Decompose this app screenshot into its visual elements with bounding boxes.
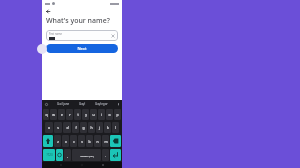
button[interactable]: h — [88, 122, 95, 133]
staticText: k — [107, 125, 109, 130]
button[interactable]: Shift — [43, 135, 53, 147]
button[interactable]: English (US) — [72, 149, 101, 161]
staticText: w — [52, 112, 55, 117]
staticText: t — [77, 112, 79, 117]
staticText: , — [67, 153, 68, 158]
button[interactable]: q — [43, 109, 49, 120]
button[interactable]: e — [58, 109, 65, 120]
button[interactable]: f — [72, 122, 79, 133]
button[interactable]: d — [63, 122, 71, 133]
staticText: j — [99, 125, 100, 130]
button[interactable]: c — [70, 135, 77, 147]
button[interactable]: a — [45, 122, 53, 133]
button[interactable]: v — [78, 135, 85, 147]
staticText: z — [57, 139, 59, 144]
staticText: d — [66, 125, 69, 130]
button[interactable]: o — [106, 109, 113, 120]
button[interactable]: z — [54, 135, 61, 147]
staticText: x — [65, 139, 67, 144]
staticText: b — [88, 139, 91, 144]
button[interactable]: Voice input — [116, 102, 120, 106]
button[interactable]: r — [66, 109, 73, 120]
staticText: u — [92, 112, 95, 117]
button[interactable]: j — [96, 122, 103, 133]
button[interactable]: Home — [80, 163, 84, 167]
staticText: Gaylegor — [95, 102, 108, 106]
button[interactable]: b — [86, 135, 93, 147]
staticText: ?123 — [46, 153, 53, 157]
button[interactable]: Gayl — [78, 102, 87, 106]
button[interactable]: ?123 — [43, 149, 55, 161]
button[interactable]: y — [82, 109, 89, 120]
staticText: Next — [77, 46, 87, 51]
staticText: s — [57, 125, 59, 130]
button[interactable]: Recents — [101, 163, 105, 167]
staticText: o — [108, 112, 111, 117]
button[interactable]: Back — [44, 7, 52, 15]
staticText: Gayl — [79, 102, 86, 106]
button[interactable]: , — [64, 149, 71, 161]
staticText: g — [82, 125, 85, 130]
button[interactable]: l — [112, 122, 119, 133]
button[interactable]: Next — [46, 44, 118, 53]
staticText: m — [104, 139, 108, 144]
button[interactable]: p — [114, 109, 121, 120]
button[interactable]: Clear text — [110, 33, 116, 39]
staticText: p — [116, 112, 119, 117]
button[interactable]: Keyboard settings — [44, 102, 48, 106]
staticText: c — [73, 139, 75, 144]
staticText: i — [101, 112, 102, 117]
button[interactable]: Gaylegor — [94, 102, 109, 106]
staticText: v — [81, 139, 83, 144]
button[interactable]: s — [54, 122, 62, 133]
staticText: q — [45, 112, 48, 117]
staticText: h — [90, 125, 93, 130]
staticText: l — [115, 125, 116, 130]
staticText: r — [69, 112, 71, 117]
staticText: a — [48, 125, 50, 130]
button[interactable]: k — [104, 122, 111, 133]
button[interactable]: n — [94, 135, 101, 147]
staticText: n — [96, 139, 99, 144]
staticText: y — [85, 112, 87, 117]
button[interactable]: x — [62, 135, 69, 147]
button[interactable]: m — [102, 135, 109, 147]
button[interactable]: Backspace — [110, 135, 121, 147]
button[interactable]: First name — [46, 30, 118, 41]
button[interactable]: g — [80, 122, 87, 133]
button[interactable]: Back — [59, 163, 63, 167]
staticText: Gail jane — [57, 102, 70, 106]
button[interactable]: Enter — [110, 149, 121, 161]
button[interactable]: u — [90, 109, 97, 120]
staticText: First name — [49, 32, 62, 36]
button[interactable]: w — [50, 109, 57, 120]
staticText: What's your name? — [46, 16, 110, 26]
button[interactable]: i — [98, 109, 105, 120]
button[interactable]: Gail jane — [56, 102, 71, 106]
staticText: . — [105, 153, 106, 158]
staticText: f — [75, 125, 77, 130]
button[interactable]: t — [74, 109, 81, 120]
staticText: English (US) — [80, 154, 94, 157]
staticText: e — [61, 112, 63, 117]
button[interactable]: . — [102, 149, 109, 161]
button[interactable]: Emoji — [56, 149, 63, 161]
